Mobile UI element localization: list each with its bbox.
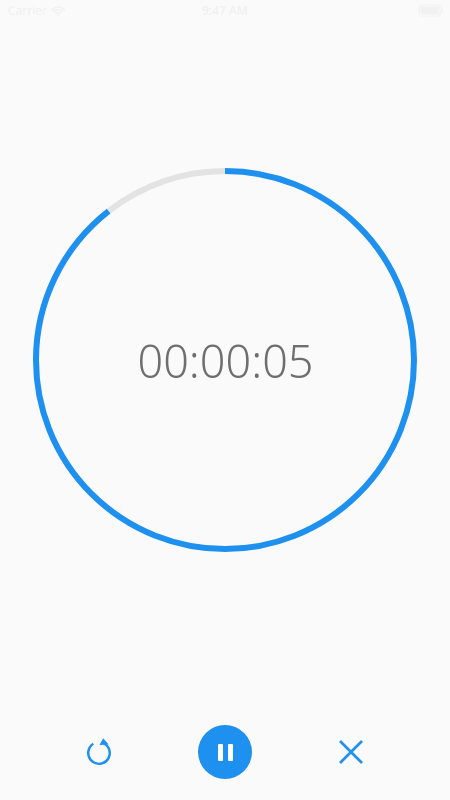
staticText: Carrier [8,2,48,18]
button[interactable]: Close [323,724,379,780]
button[interactable]: Pause [198,725,252,779]
button[interactable]: Reset [71,724,127,780]
staticText: 9:47 AM [202,2,248,18]
staticText: 00:00:05 [137,330,314,391]
